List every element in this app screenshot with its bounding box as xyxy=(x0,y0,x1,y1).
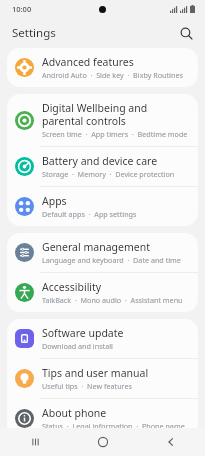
staticText: Storage · Memory · Device protection xyxy=(42,169,175,179)
staticText: Screen time · App timers · Bedtime mode xyxy=(42,129,188,139)
staticText: Settings xyxy=(12,25,56,41)
staticText: Accessibility xyxy=(42,280,102,294)
button[interactable]: Advanced features xyxy=(7,48,198,87)
button[interactable]: Accessibility xyxy=(7,273,198,312)
button[interactable]: Search xyxy=(175,22,197,44)
staticText: Tips and user manual xyxy=(42,366,149,380)
button[interactable]: Home xyxy=(69,428,137,456)
staticText: Digital Wellbeing and parental controls xyxy=(42,101,188,128)
staticText: 10:00 xyxy=(12,4,32,14)
staticText: General management xyxy=(42,240,150,254)
staticText: Default apps · App settings xyxy=(42,209,137,219)
button[interactable]: Apps xyxy=(7,187,198,226)
button[interactable]: Recent apps xyxy=(0,428,69,456)
staticText: Useful tips · New features xyxy=(42,381,132,391)
staticText: Android Auto · Side key · Bixby Routines xyxy=(42,70,183,80)
button[interactable]: General management xyxy=(7,233,198,272)
button[interactable]: Tips and user manual xyxy=(7,359,198,398)
staticText: About phone xyxy=(42,406,107,420)
staticText: Status · Legal information · Phone name xyxy=(42,421,185,428)
staticText: Language and keyboard · Date and time xyxy=(42,255,181,265)
button[interactable]: Software update xyxy=(7,319,198,358)
staticText: Apps xyxy=(42,194,67,208)
staticText: Download and install xyxy=(42,341,113,351)
staticText: Software update xyxy=(42,326,124,340)
button[interactable]: About phone xyxy=(7,399,198,428)
button[interactable]: Digital Wellbeing and parental controls xyxy=(7,94,198,146)
staticText: Advanced features xyxy=(42,55,134,69)
button[interactable]: Back xyxy=(137,428,205,456)
staticText: TalkBack · Mono audio · Assistant menu xyxy=(42,295,183,305)
button[interactable]: Battery and device care xyxy=(7,147,198,186)
staticText: Battery and device care xyxy=(42,154,158,168)
